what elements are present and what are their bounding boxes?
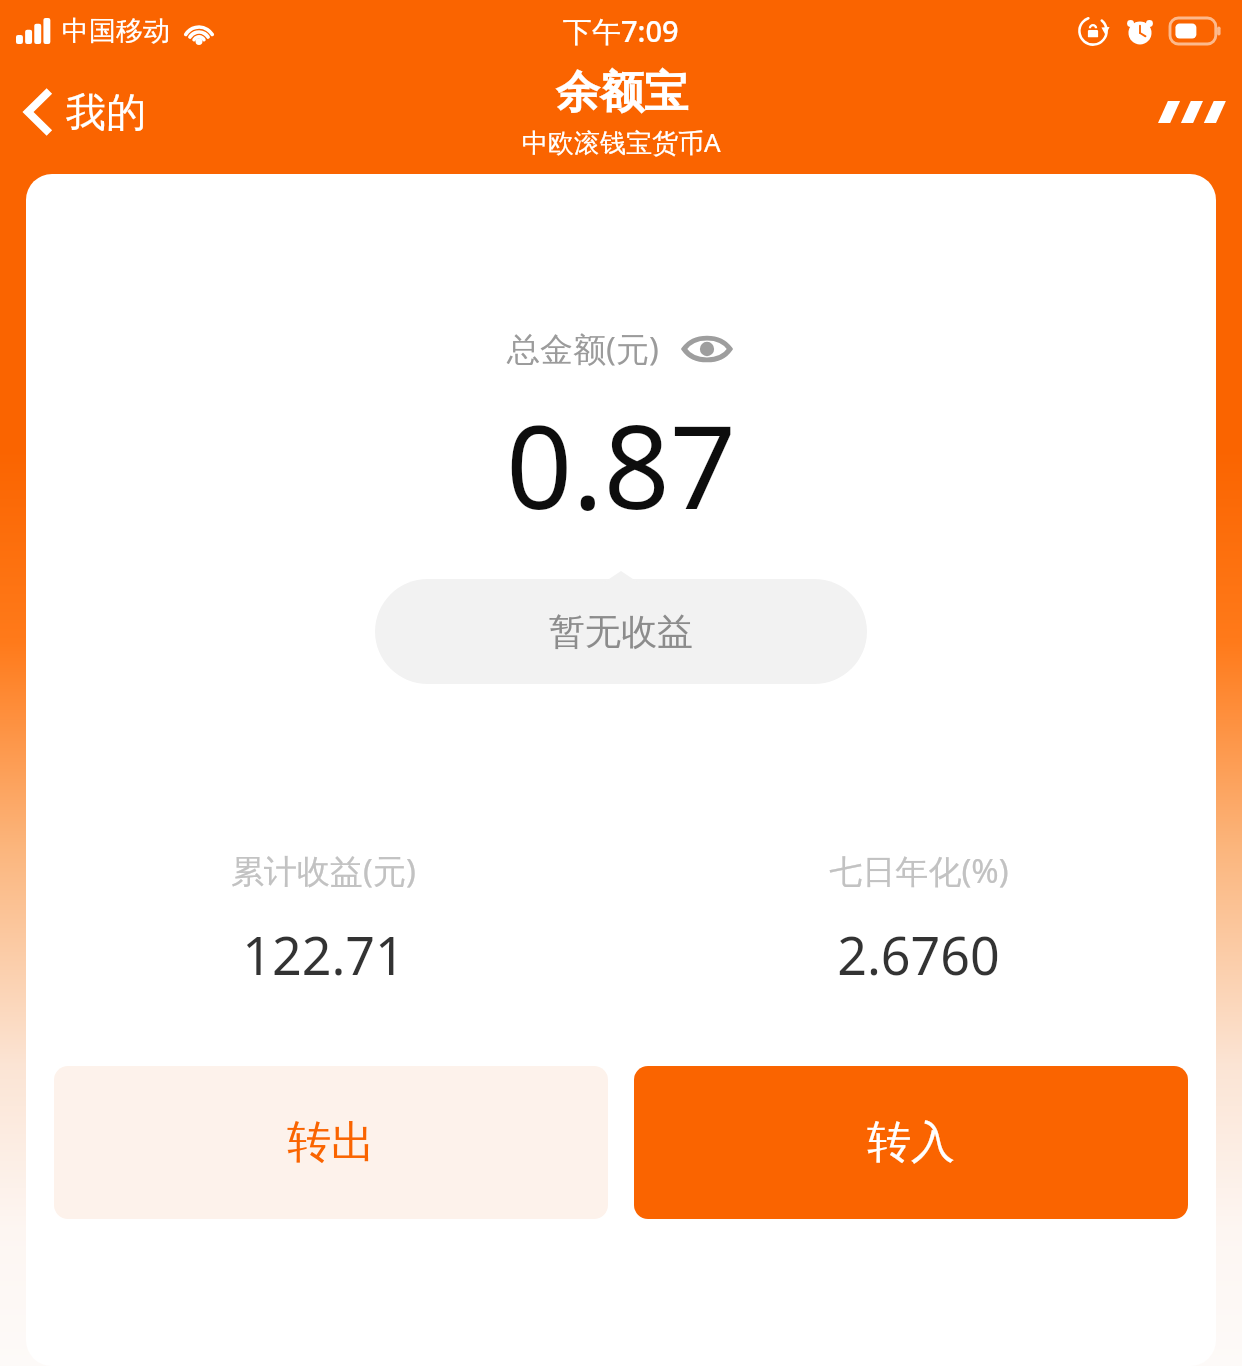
staticText: 转出 bbox=[287, 1115, 375, 1170]
button[interactable]: More options bbox=[1132, 81, 1242, 143]
staticText: 七日年化(%) bbox=[829, 848, 1009, 893]
staticText: 我的 bbox=[66, 87, 146, 137]
staticText: 中欧滚钱宝货币A bbox=[522, 124, 721, 160]
staticText: 总金额(元) bbox=[507, 326, 659, 371]
staticText: 累计收益(元) bbox=[231, 848, 416, 893]
staticText: 2.6760 bbox=[837, 919, 1000, 990]
button[interactable]: 我的 bbox=[0, 79, 164, 145]
button[interactable]: 七日年化(%) bbox=[621, 848, 1216, 990]
staticText: 122.71 bbox=[242, 919, 405, 990]
button[interactable]: Toggle amount visibility bbox=[679, 327, 735, 371]
staticText: 转入 bbox=[867, 1115, 955, 1170]
staticText: 余额宝 bbox=[556, 65, 688, 120]
staticText: 暂无收益 bbox=[549, 609, 693, 654]
button[interactable]: 转入 bbox=[634, 1066, 1188, 1219]
button[interactable]: 转出 bbox=[54, 1066, 608, 1219]
staticText: 下午7:09 bbox=[563, 11, 679, 51]
staticText: 中国移动 bbox=[62, 14, 170, 48]
button[interactable]: 暂无收益 bbox=[375, 579, 867, 684]
staticText: 0.87 bbox=[506, 385, 737, 543]
button[interactable]: 累计收益(元) bbox=[26, 848, 621, 990]
